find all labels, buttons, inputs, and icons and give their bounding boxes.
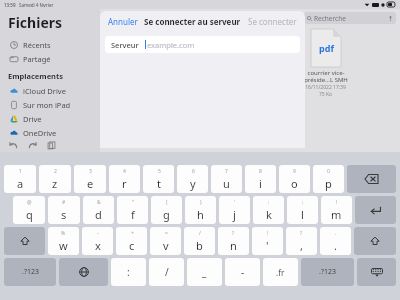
staticText: .fr xyxy=(276,267,285,278)
button[interactable]: ; xyxy=(287,196,318,224)
button[interactable]: ? xyxy=(218,227,249,255)
button[interactable]: " xyxy=(117,196,148,224)
button[interactable]: # xyxy=(48,196,80,224)
staticText: / xyxy=(165,265,169,279)
button[interactable]: Return xyxy=(355,196,396,224)
button[interactable]: 2 xyxy=(39,165,71,193)
button[interactable]: Undo xyxy=(8,140,19,151)
staticText: 9 xyxy=(293,168,296,175)
staticText: + xyxy=(131,230,134,237)
button[interactable]: % xyxy=(48,227,79,255)
button[interactable]: Se connecter xyxy=(246,14,299,29)
button[interactable]: Backspace xyxy=(347,165,396,193)
staticText: w xyxy=(59,238,68,253)
button[interactable]: - xyxy=(225,258,260,286)
button[interactable]: Redo xyxy=(27,140,38,151)
staticText: ( xyxy=(166,199,168,206)
staticText: OneDrive xyxy=(23,128,57,138)
staticText: d xyxy=(95,207,102,222)
button[interactable]: Change keyboard language xyxy=(59,258,108,286)
button[interactable]: .?123 xyxy=(301,258,354,286)
button[interactable]: 0 xyxy=(313,165,344,193)
staticText: n xyxy=(230,238,237,253)
button[interactable]: .?123 xyxy=(4,258,56,286)
staticText: Récents xyxy=(23,40,51,50)
button[interactable]: 9 xyxy=(279,165,310,193)
button[interactable]: Capture d'écran 2 xyxy=(102,29,251,97)
button[interactable]: = xyxy=(150,227,181,255)
button[interactable]: Recherche xyxy=(304,12,396,24)
staticText: : xyxy=(268,199,270,206)
button[interactable]: ' xyxy=(219,196,250,224)
button[interactable]: / xyxy=(184,227,215,255)
button[interactable]: .fr xyxy=(263,258,298,286)
staticText: Samedi 4 février xyxy=(19,2,54,8)
button[interactable]: & xyxy=(83,196,114,224)
staticText: example.com xyxy=(147,40,195,50)
button[interactable]: : xyxy=(111,258,146,286)
button[interactable]: Paste xyxy=(46,140,57,151)
staticText: - xyxy=(241,265,245,279)
button[interactable]: 1 xyxy=(4,165,36,193)
staticText: pdf xyxy=(319,42,334,54)
staticText: i xyxy=(259,176,262,191)
staticText: Emplacements xyxy=(8,71,64,81)
staticText: c xyxy=(129,238,135,253)
staticText: % xyxy=(61,230,66,237)
button[interactable]: - xyxy=(82,227,113,255)
staticText: .?123 xyxy=(319,267,336,277)
button[interactable]: ? xyxy=(286,227,317,255)
button[interactable]: 8 xyxy=(245,165,276,193)
button[interactable]: 3 xyxy=(74,165,106,193)
staticText: ? xyxy=(232,230,235,237)
staticText: ' xyxy=(266,238,269,253)
staticText: Recherche xyxy=(314,14,346,23)
button[interactable]: . xyxy=(320,227,351,255)
button[interactable]: ! xyxy=(321,196,352,224)
button[interactable]: Sur mon iPad xyxy=(8,98,100,112)
button[interactable]: pdf xyxy=(251,29,400,97)
staticText: 0 xyxy=(327,168,330,175)
button[interactable]: Drive xyxy=(8,112,100,126)
staticText: ) xyxy=(200,199,202,206)
button[interactable]: Shift xyxy=(4,227,45,255)
button[interactable]: Hide keyboard xyxy=(357,258,396,286)
button[interactable]: 7 xyxy=(211,165,242,193)
staticText: ! xyxy=(267,230,269,237)
staticText: 16/11/2022 17:39 75 Ko xyxy=(305,84,346,97)
staticText: : xyxy=(127,265,130,279)
staticText: 4 xyxy=(123,168,126,175)
button[interactable]: 5 xyxy=(143,165,174,193)
button[interactable]: _ xyxy=(187,258,222,286)
button[interactable]: iCloud Drive xyxy=(8,84,100,98)
button[interactable]: ( xyxy=(151,196,182,224)
button[interactable]: ) xyxy=(185,196,216,224)
staticText: o xyxy=(291,176,298,191)
staticText: q xyxy=(26,207,33,222)
staticText: 8 xyxy=(259,168,262,175)
staticText: / xyxy=(199,230,201,237)
button[interactable]: 6 xyxy=(177,165,208,193)
staticText: , xyxy=(300,238,303,253)
button[interactable]: + xyxy=(116,227,147,255)
button[interactable]: OneDrive xyxy=(8,126,100,140)
button[interactable]: ! xyxy=(252,227,283,255)
staticText: 3 xyxy=(89,168,92,175)
staticText: Serveur xyxy=(111,40,139,50)
button[interactable]: @ xyxy=(13,196,45,224)
button[interactable]: / xyxy=(149,258,184,286)
button[interactable]: Partagé xyxy=(8,52,100,66)
button[interactable]: Récents xyxy=(8,38,100,52)
staticText: . xyxy=(335,230,337,237)
staticText: x xyxy=(95,238,101,253)
button[interactable]: : xyxy=(253,196,284,224)
staticText: @ xyxy=(27,199,32,206)
button[interactable]: Shift xyxy=(354,227,396,255)
button[interactable]: Annuler xyxy=(106,14,140,29)
button[interactable]: Serveur xyxy=(105,36,300,53)
staticText: " xyxy=(132,199,135,206)
staticText: l xyxy=(301,207,304,222)
button[interactable]: 4 xyxy=(109,165,140,193)
